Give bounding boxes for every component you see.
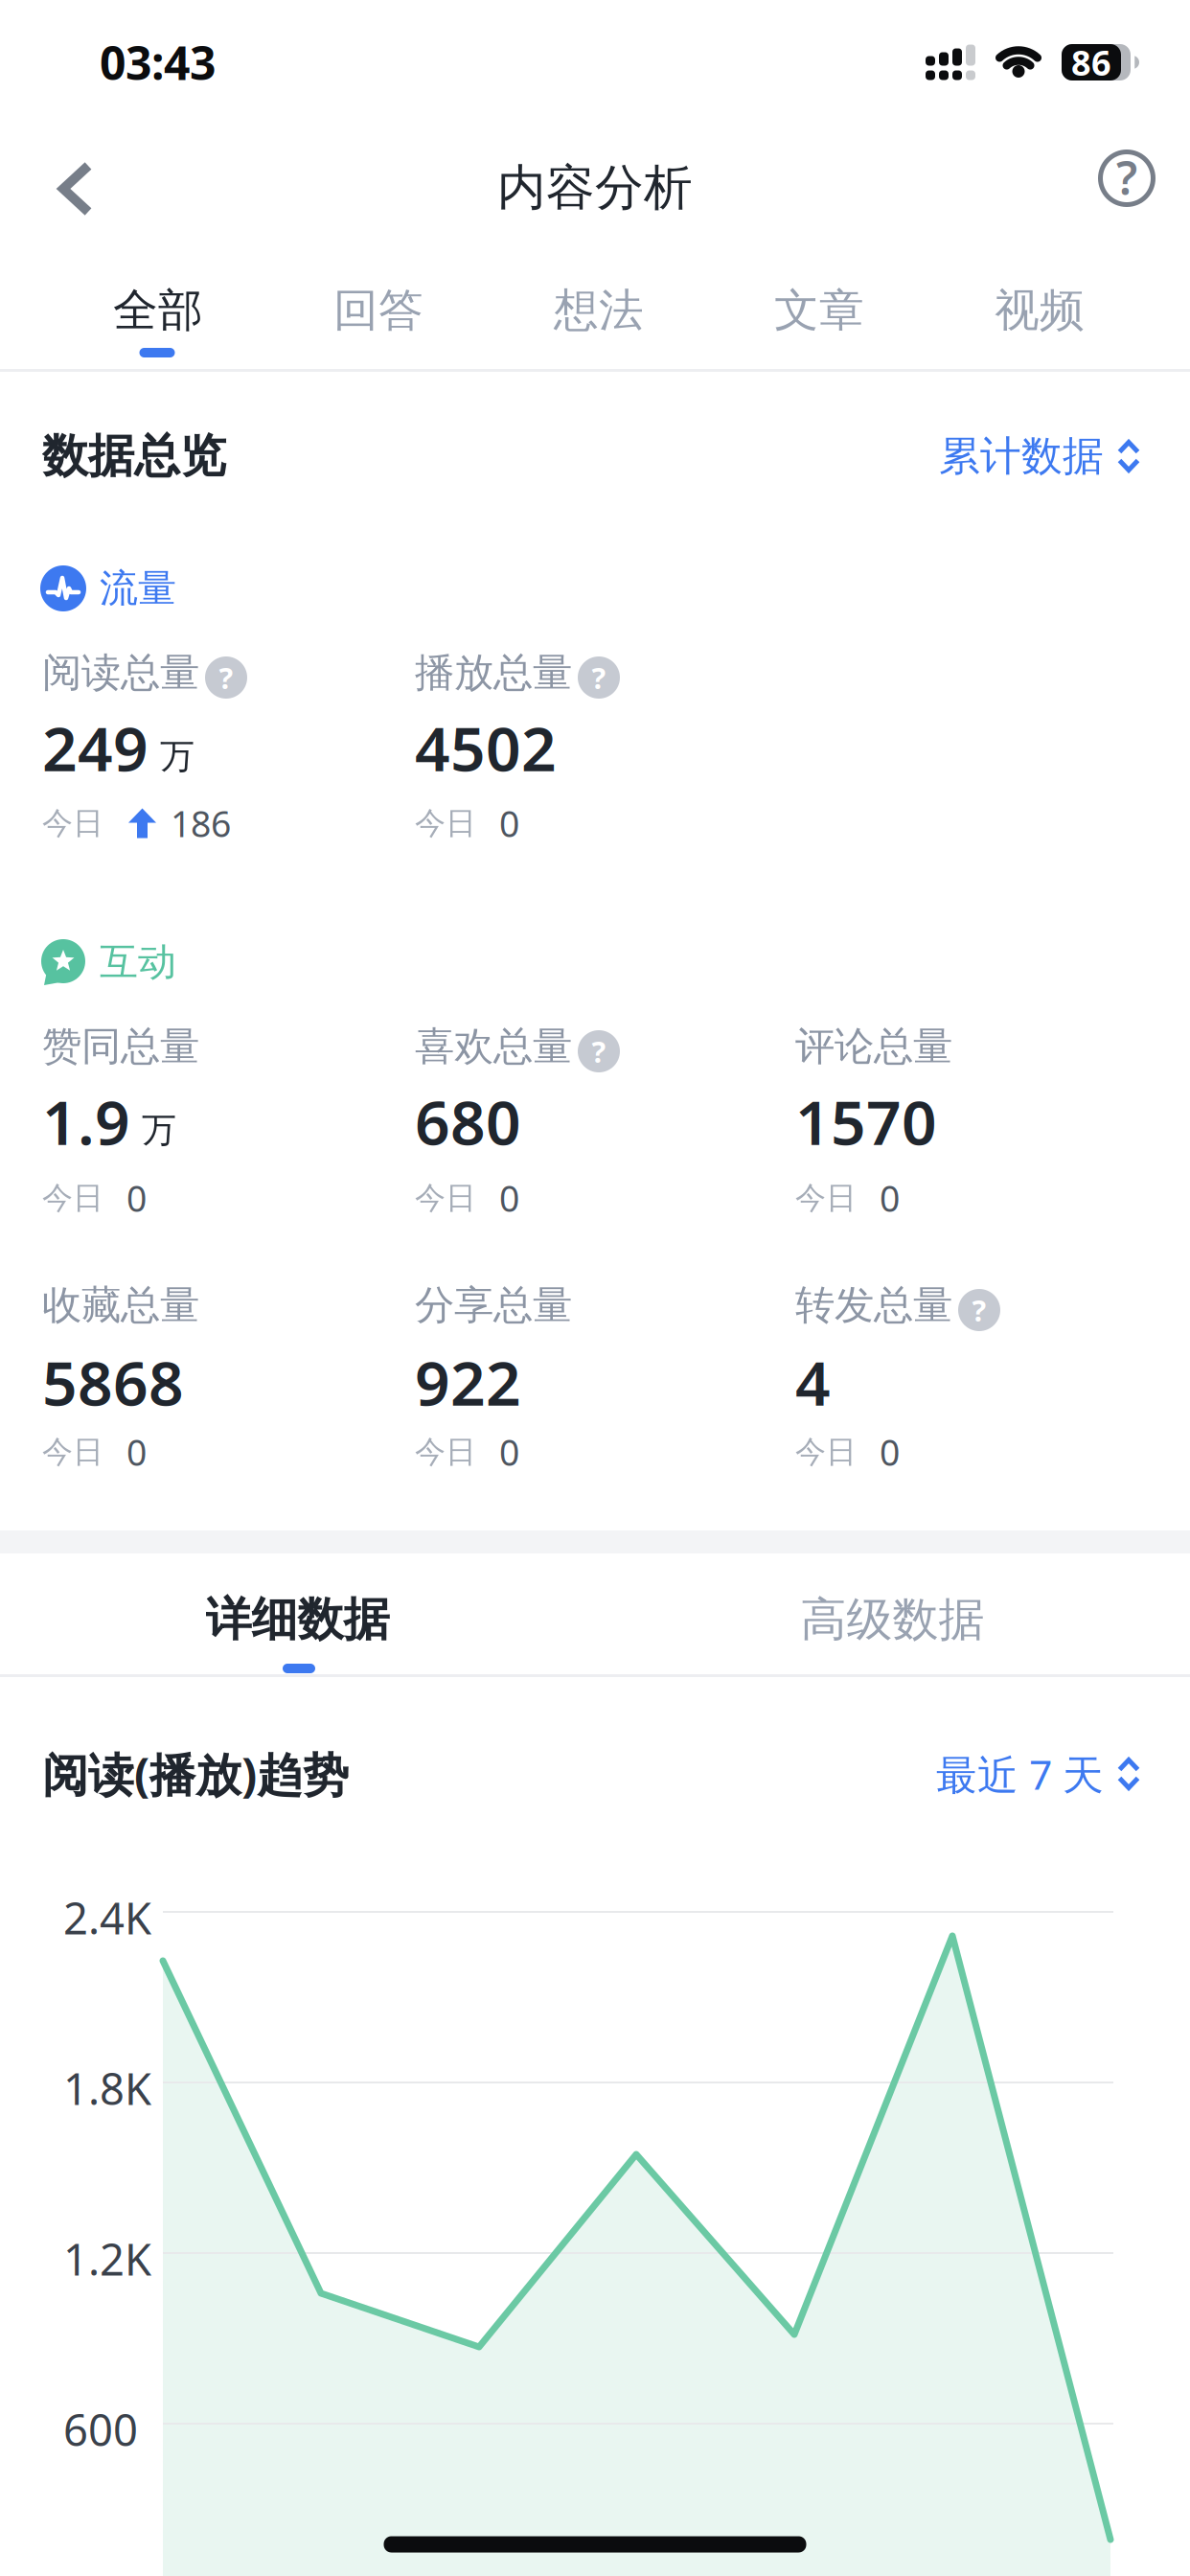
staticText: 249 xyxy=(42,707,149,788)
button[interactable]: 回答 xyxy=(321,283,436,338)
staticText: 今日 xyxy=(415,1433,476,1471)
staticText: 1570 xyxy=(795,1081,937,1162)
button[interactable]: 累计数据 xyxy=(939,431,1140,481)
staticText: ? xyxy=(972,1290,986,1329)
staticText: 内容分析 xyxy=(497,158,693,218)
staticText: 0 xyxy=(499,799,519,847)
staticText: 0 xyxy=(880,1174,900,1222)
staticText: 详细数据 xyxy=(206,1591,389,1648)
button[interactable]: 文章 xyxy=(762,283,877,338)
staticText: 600 xyxy=(63,2401,138,2458)
staticText: 喜欢总量 xyxy=(415,1022,572,1071)
staticText: 今日 xyxy=(415,1179,476,1217)
staticText: 赞同总量 xyxy=(42,1022,199,1071)
staticText: 86 xyxy=(1071,39,1111,85)
staticText: 收藏总量 xyxy=(42,1281,199,1330)
staticText: 0 xyxy=(499,1428,519,1476)
staticText: ? xyxy=(1116,147,1137,208)
staticText: 全部 xyxy=(113,283,203,338)
button[interactable]: 详细数据 xyxy=(0,1591,595,1648)
staticText: 播放总量 xyxy=(415,648,572,697)
staticText: 转发总量 xyxy=(795,1281,952,1330)
staticText: 想法 xyxy=(554,283,644,338)
staticText: 1.9 xyxy=(42,1081,130,1162)
staticText: ? xyxy=(592,658,606,697)
staticText: 0 xyxy=(499,1174,519,1222)
staticText: 回答 xyxy=(333,283,423,338)
staticText: 视频 xyxy=(995,283,1085,338)
staticText: 流量 xyxy=(100,565,176,612)
staticText: 922 xyxy=(415,1341,521,1423)
staticText: 阅读总量 xyxy=(42,648,199,697)
staticText: 1.2K xyxy=(63,2230,151,2288)
button[interactable]: Back xyxy=(34,146,121,232)
staticText: 4 xyxy=(795,1341,831,1423)
staticText: 今日 xyxy=(795,1179,857,1217)
staticText: 分享总量 xyxy=(415,1281,572,1330)
staticText: ? xyxy=(219,658,233,697)
staticText: 0 xyxy=(126,1428,147,1476)
staticText: 最近 7 天 xyxy=(936,1747,1104,1801)
staticText: 互动 xyxy=(100,939,176,986)
staticText: 2.4K xyxy=(63,1889,151,1946)
staticText: 今日 xyxy=(795,1433,857,1471)
staticText: 万 xyxy=(142,1109,176,1151)
staticText: 今日 xyxy=(42,1179,103,1217)
staticText: 高级数据 xyxy=(801,1591,984,1648)
button[interactable]: Help xyxy=(1098,149,1156,207)
staticText: 今日 xyxy=(415,804,476,842)
button[interactable]: 想法 xyxy=(541,283,656,338)
staticText: 累计数据 xyxy=(939,431,1104,481)
staticText: 03:43 xyxy=(100,32,216,93)
staticText: 186 xyxy=(171,799,231,847)
staticText: 今日 xyxy=(42,804,103,842)
staticText: 今日 xyxy=(42,1433,103,1471)
staticText: ? xyxy=(592,1032,606,1071)
staticText: 阅读(播放)趋势 xyxy=(42,1743,349,1804)
staticText: 1.8K xyxy=(63,2059,151,2117)
button[interactable]: 视频 xyxy=(982,283,1097,338)
staticText: 680 xyxy=(415,1081,521,1162)
staticText: 0 xyxy=(880,1428,900,1476)
staticText: 评论总量 xyxy=(795,1022,952,1071)
button[interactable]: 最近 7 天 xyxy=(936,1747,1140,1801)
staticText: 4502 xyxy=(415,707,557,788)
button[interactable]: 全部 xyxy=(101,283,216,338)
staticText: 0 xyxy=(126,1174,147,1222)
staticText: 文章 xyxy=(774,283,864,338)
button[interactable]: 高级数据 xyxy=(595,1591,1190,1648)
staticText: 万 xyxy=(160,735,195,778)
staticText: 数据总览 xyxy=(42,428,226,484)
staticText: 5868 xyxy=(42,1341,184,1423)
